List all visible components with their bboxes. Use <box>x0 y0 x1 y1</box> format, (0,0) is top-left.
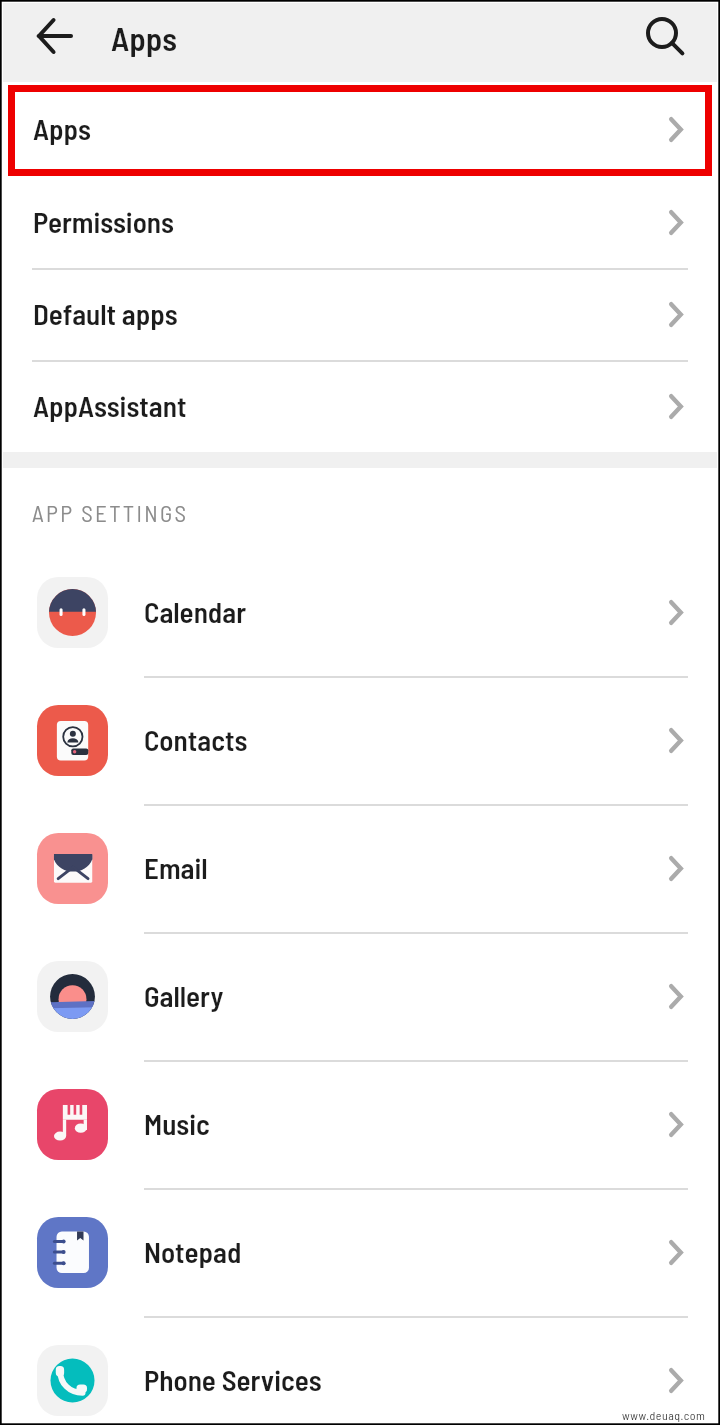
staticText: Contacts <box>144 722 248 757</box>
staticText: APP SETTINGS <box>32 499 189 527</box>
button[interactable]: Back <box>27 8 82 63</box>
staticText: Email <box>144 850 208 885</box>
button[interactable]: Calendar <box>0 548 720 676</box>
button[interactable]: Apps <box>0 82 720 177</box>
button[interactable]: Music <box>0 1060 720 1188</box>
staticText: Music <box>144 1106 210 1141</box>
button[interactable]: AppAssistant <box>0 360 720 452</box>
button[interactable]: Phone Services <box>0 1316 720 1425</box>
staticText: Notepad <box>144 1234 242 1269</box>
staticText: Default apps <box>33 296 178 331</box>
staticText: Gallery <box>144 978 224 1013</box>
button[interactable]: Permissions <box>0 177 720 268</box>
button[interactable]: Notepad <box>0 1188 720 1316</box>
button[interactable]: Gallery <box>0 932 720 1060</box>
button[interactable]: Default apps <box>0 268 720 360</box>
button[interactable]: Email <box>0 804 720 932</box>
button[interactable]: Contacts <box>0 676 720 804</box>
staticText: Calendar <box>144 594 247 629</box>
staticText: Phone Services <box>144 1362 322 1397</box>
button[interactable]: Search <box>638 9 692 63</box>
staticText: Apps <box>33 111 92 146</box>
staticText: www.deuaq.com <box>622 1408 706 1422</box>
staticText: Permissions <box>33 204 175 239</box>
staticText: AppAssistant <box>33 388 187 423</box>
staticText: Apps <box>111 18 178 58</box>
